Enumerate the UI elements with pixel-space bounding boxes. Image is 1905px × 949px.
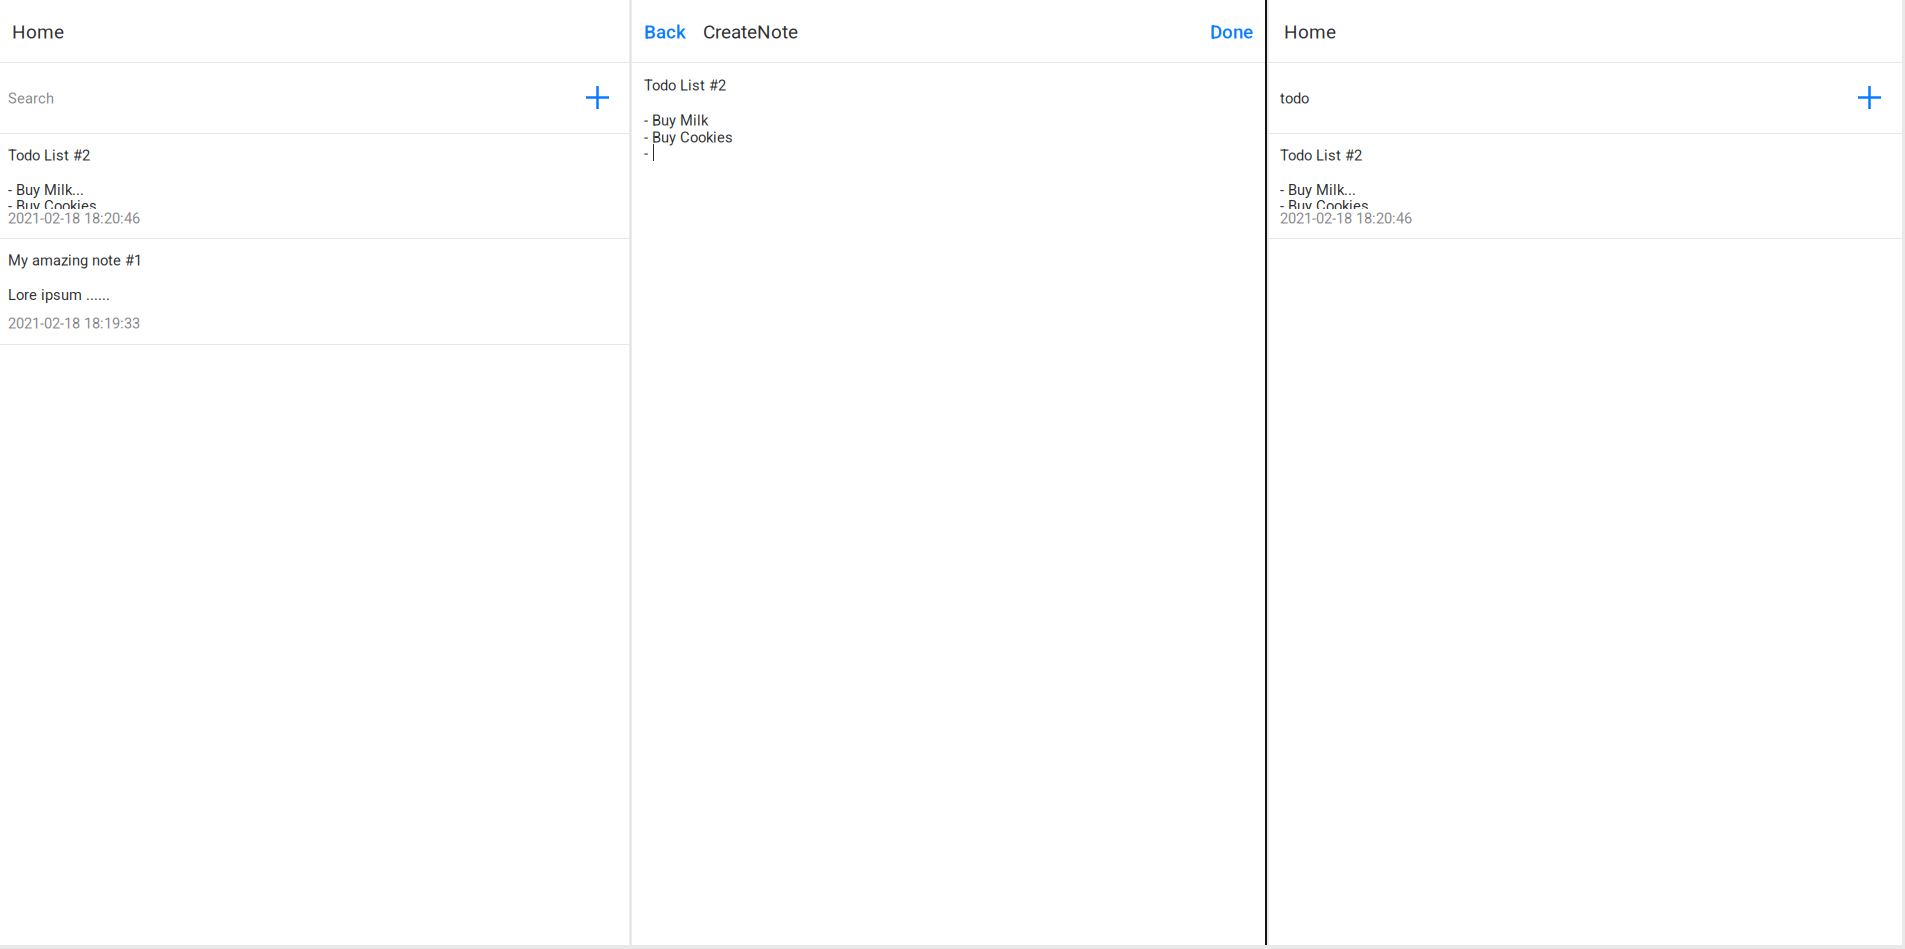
staticText: Todo List #2	[1280, 147, 1362, 164]
button[interactable]: Todo List #2	[1269, 134, 1902, 238]
staticText: - Buy Milk...	[8, 181, 84, 199]
button[interactable]: Todo List #2	[0, 134, 629, 238]
staticText: Home	[12, 21, 64, 43]
button[interactable]: Search	[0, 63, 629, 133]
button[interactable]: Back	[644, 21, 686, 43]
staticText: CreateNote	[703, 21, 798, 43]
staticText: 2021-02-18 18:20:46	[8, 210, 140, 227]
button[interactable]: Add note	[1846, 74, 1893, 121]
button[interactable]: Add note	[574, 74, 621, 121]
button[interactable]: Note text	[632, 63, 1265, 945]
staticText: - Buy Cookies	[644, 129, 733, 146]
button[interactable]: My amazing note #1	[0, 239, 629, 344]
button[interactable]: Done	[1210, 21, 1253, 43]
staticText: - Buy Cookies	[1280, 197, 1369, 215]
staticText: Todo List #2	[8, 147, 90, 164]
staticText: todo	[1280, 90, 1309, 107]
staticText: 2021-02-18 18:19:33	[8, 315, 140, 332]
staticText: Todo List #2	[644, 77, 726, 94]
staticText: My amazing note #1	[8, 252, 142, 269]
staticText: - Buy Milk...	[1280, 181, 1356, 199]
staticText: Search	[8, 90, 54, 107]
staticText: - Buy Milk	[644, 112, 708, 129]
staticText: Lore ipsum ......	[8, 286, 110, 304]
staticText: Done	[1210, 21, 1253, 43]
staticText: -	[644, 145, 648, 162]
staticText: - Buy Cookies	[8, 197, 97, 215]
button[interactable]: todo	[1269, 63, 1902, 133]
staticText: Home	[1284, 21, 1336, 43]
staticText: Back	[644, 21, 686, 43]
staticText: 2021-02-18 18:20:46	[1280, 210, 1412, 227]
